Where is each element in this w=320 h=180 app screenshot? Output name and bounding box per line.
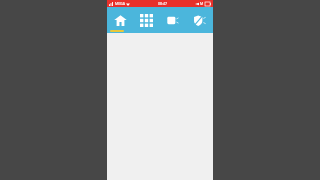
button[interactable]: Devices	[159, 7, 186, 33]
button[interactable]: Apps	[133, 7, 159, 33]
button[interactable]: Home	[107, 7, 133, 33]
staticText: MEGA	[115, 1, 125, 6]
button[interactable]: Security	[186, 7, 213, 33]
staticText: 08:47	[158, 1, 167, 6]
staticText: M	[200, 1, 204, 6]
